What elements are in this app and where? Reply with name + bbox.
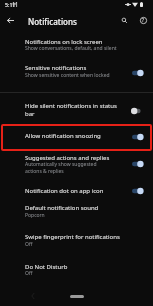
staticText: Swipe fingerprint for notifications [25,233,120,241]
button[interactable]: On [128,158,150,170]
button[interactable]: On [128,131,150,143]
staticText: Notification dot on app icon [25,187,104,195]
button[interactable] [0,98,153,122]
button[interactable] [0,152,153,178]
staticText: Suggested actions and replies [25,154,110,162]
button[interactable]: On [128,67,150,79]
staticText: Do Not Disturb [25,263,68,271]
staticText: Sensitive notifications [25,64,87,72]
button[interactable]: Search [115,11,133,29]
button[interactable]: Help [134,11,152,29]
staticText: bar [25,110,35,118]
staticText: Notifications on lock screen [25,38,103,46]
staticText: Default notification sound [25,204,99,212]
staticText: Hide silent notifications in status [25,102,117,110]
button[interactable]: Notifications [28,16,77,27]
button[interactable]: On [128,185,150,197]
button[interactable] [1,124,152,151]
staticText: Automatically show suggested [25,161,97,168]
button[interactable] [0,202,153,228]
staticText: Show sensitive content when locked [25,72,110,79]
button[interactable] [0,182,153,200]
staticText: ? [142,17,144,23]
staticText: 5:11 [5,1,16,8]
staticText: Off [25,270,33,277]
staticText: Off [25,241,33,248]
button[interactable]: Back [1,11,20,30]
staticText: Popcorn [25,212,45,219]
staticText: Allow notification snoozing [25,132,101,140]
staticText: Show conversations, default, and silent [25,45,117,52]
button[interactable] [0,61,153,87]
button[interactable]: Back [31,293,35,299]
staticText: Notifications [28,16,77,27]
button[interactable]: Off [127,105,149,117]
button[interactable] [0,34,153,59]
button[interactable] [0,231,153,257]
staticText: actions & replies [25,168,64,175]
button[interactable] [0,260,153,286]
button[interactable]: Home [70,295,84,298]
